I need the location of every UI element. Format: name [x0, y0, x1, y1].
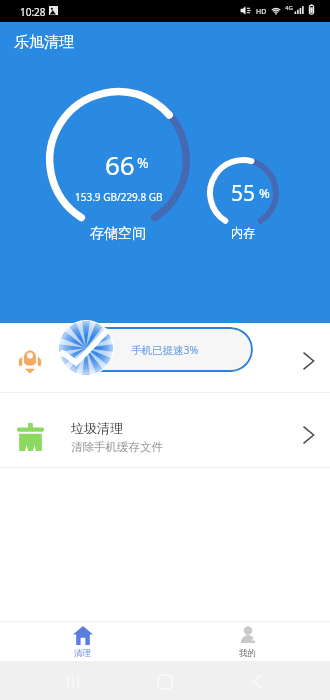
staticText: 手机已提速3% [131, 343, 199, 357]
staticText: 我的 [239, 648, 256, 659]
staticText: 清除手机缓存文件 [71, 440, 163, 454]
staticText: 垃圾清理 [71, 420, 123, 436]
button[interactable]: Back [251, 675, 263, 688]
staticText: 10:28 [20, 5, 46, 19]
staticText: HD [256, 7, 267, 17]
button[interactable]: Home [158, 675, 172, 689]
staticText: 乐旭清理 [14, 33, 74, 52]
button[interactable]: 清理 [0, 622, 165, 661]
staticText: % [137, 153, 149, 172]
staticText: 55 [231, 179, 256, 203]
button[interactable]: 我的 [165, 622, 330, 661]
staticText: 66 [105, 147, 135, 177]
staticText: % [259, 184, 270, 202]
button[interactable]: Recents [66, 675, 80, 689]
staticText: 清理 [74, 648, 91, 659]
button[interactable]: 垃圾清理 [0, 393, 330, 467]
staticText: 4G [285, 4, 293, 12]
staticText: 内存 [231, 225, 255, 240]
button[interactable]: 手机已提速3% [0, 323, 330, 392]
staticText: 153.9 GB/229.8 GB [75, 190, 163, 204]
staticText: 存储空间 [90, 225, 146, 243]
